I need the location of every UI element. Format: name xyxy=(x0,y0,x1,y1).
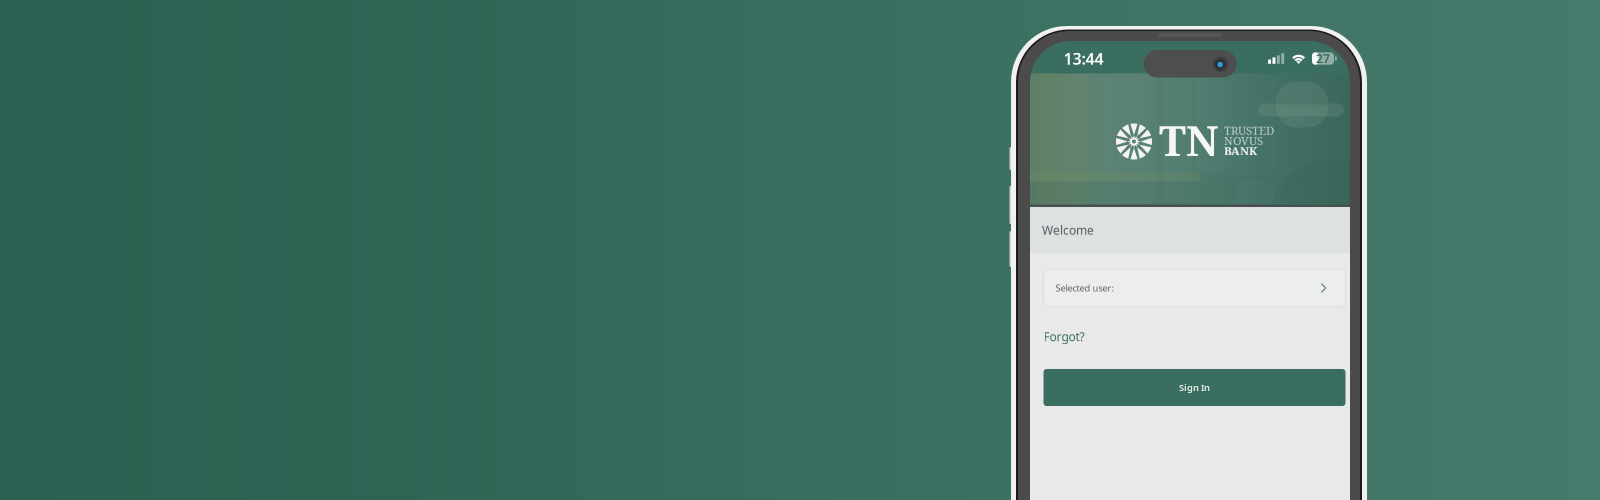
staticText: 27 xyxy=(1316,50,1330,66)
button[interactable]: Forgot? xyxy=(1043,330,1103,343)
staticText: NOVUS xyxy=(1224,133,1263,148)
staticText: Forgot? xyxy=(1043,328,1084,344)
staticText: Sign In xyxy=(1179,381,1210,394)
staticText: TN xyxy=(1159,112,1219,168)
staticText: TRUSTED xyxy=(1224,122,1274,138)
staticText: Selected user: xyxy=(1055,282,1114,294)
button[interactable]: Selected user: xyxy=(1043,269,1345,307)
button[interactable]: Sign In xyxy=(1043,369,1345,406)
staticText: BANK xyxy=(1224,143,1257,159)
staticText: Welcome xyxy=(1042,222,1094,238)
staticText: 13:44 xyxy=(1063,48,1103,69)
